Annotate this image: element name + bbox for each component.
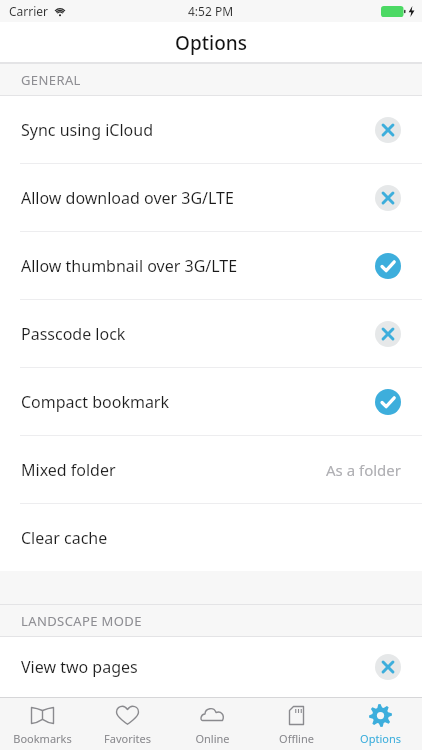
button[interactable]: Mixed folder [0, 436, 422, 503]
staticText: Compact bookmark [21, 391, 170, 413]
button[interactable]: Off [375, 185, 401, 211]
button[interactable]: Online [170, 698, 254, 750]
button[interactable]: Options [338, 698, 422, 750]
button[interactable]: Off [375, 117, 401, 143]
staticText: As a folder [326, 460, 401, 480]
button[interactable]: Bookmarks [0, 698, 85, 750]
staticText: Bookmarks [13, 731, 72, 746]
staticText: Clear cache [21, 527, 108, 549]
staticText: 4:52 PM [188, 3, 234, 19]
staticText: View two pages [21, 656, 138, 678]
staticText: Carrier [9, 3, 49, 19]
staticText: Allow download over 3G/LTE [21, 187, 234, 209]
button[interactable]: Passcode lock [0, 300, 422, 367]
staticText: Online [195, 731, 230, 746]
button[interactable]: Off [375, 321, 401, 347]
button[interactable]: Allow download over 3G/LTE [0, 164, 422, 231]
button[interactable]: Offline [254, 698, 338, 750]
staticText: Sync using iCloud [21, 119, 154, 141]
button[interactable]: Sync using iCloud [0, 96, 422, 163]
button[interactable]: View two pages [0, 637, 422, 697]
button[interactable]: Favorites [85, 698, 170, 750]
staticText: Options [360, 731, 401, 746]
staticText: GENERAL [21, 71, 81, 89]
button[interactable]: On [375, 389, 401, 415]
button[interactable]: Compact bookmark [0, 368, 422, 435]
staticText: Offline [279, 731, 314, 746]
staticText: Passcode lock [21, 323, 126, 345]
staticText: Allow thumbnail over 3G/LTE [21, 255, 238, 277]
staticText: Mixed folder [21, 459, 116, 481]
staticText: Options [175, 30, 247, 56]
button[interactable]: Off [375, 654, 401, 680]
staticText: Favorites [104, 731, 151, 746]
button[interactable]: Allow thumbnail over 3G/LTE [0, 232, 422, 299]
staticText: LANDSCAPE MODE [21, 612, 142, 630]
button[interactable]: On [375, 253, 401, 279]
button[interactable]: Clear cache [0, 504, 422, 571]
